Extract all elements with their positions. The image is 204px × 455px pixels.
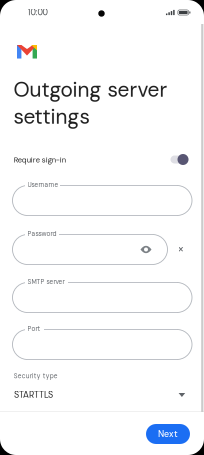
staticText: STARTTLS: [14, 389, 53, 400]
staticText: Port: [27, 325, 40, 333]
staticText: Outgoing server settings: [14, 76, 168, 130]
button[interactable]: Require sign-in: [0, 150, 204, 170]
staticText: ×: [177, 241, 184, 257]
staticText: SMTP server: [27, 278, 64, 286]
staticText: Password: [27, 230, 56, 238]
button[interactable]: Next: [146, 424, 190, 444]
staticText: Require sign-in: [14, 155, 66, 165]
staticText: Security type: [14, 372, 58, 380]
button[interactable]: Security type: [0, 370, 204, 402]
button[interactable]: Clear password: [172, 240, 190, 258]
staticText: Next: [158, 428, 178, 440]
staticText: Username: [27, 181, 58, 189]
staticText: 10:00: [27, 7, 47, 18]
